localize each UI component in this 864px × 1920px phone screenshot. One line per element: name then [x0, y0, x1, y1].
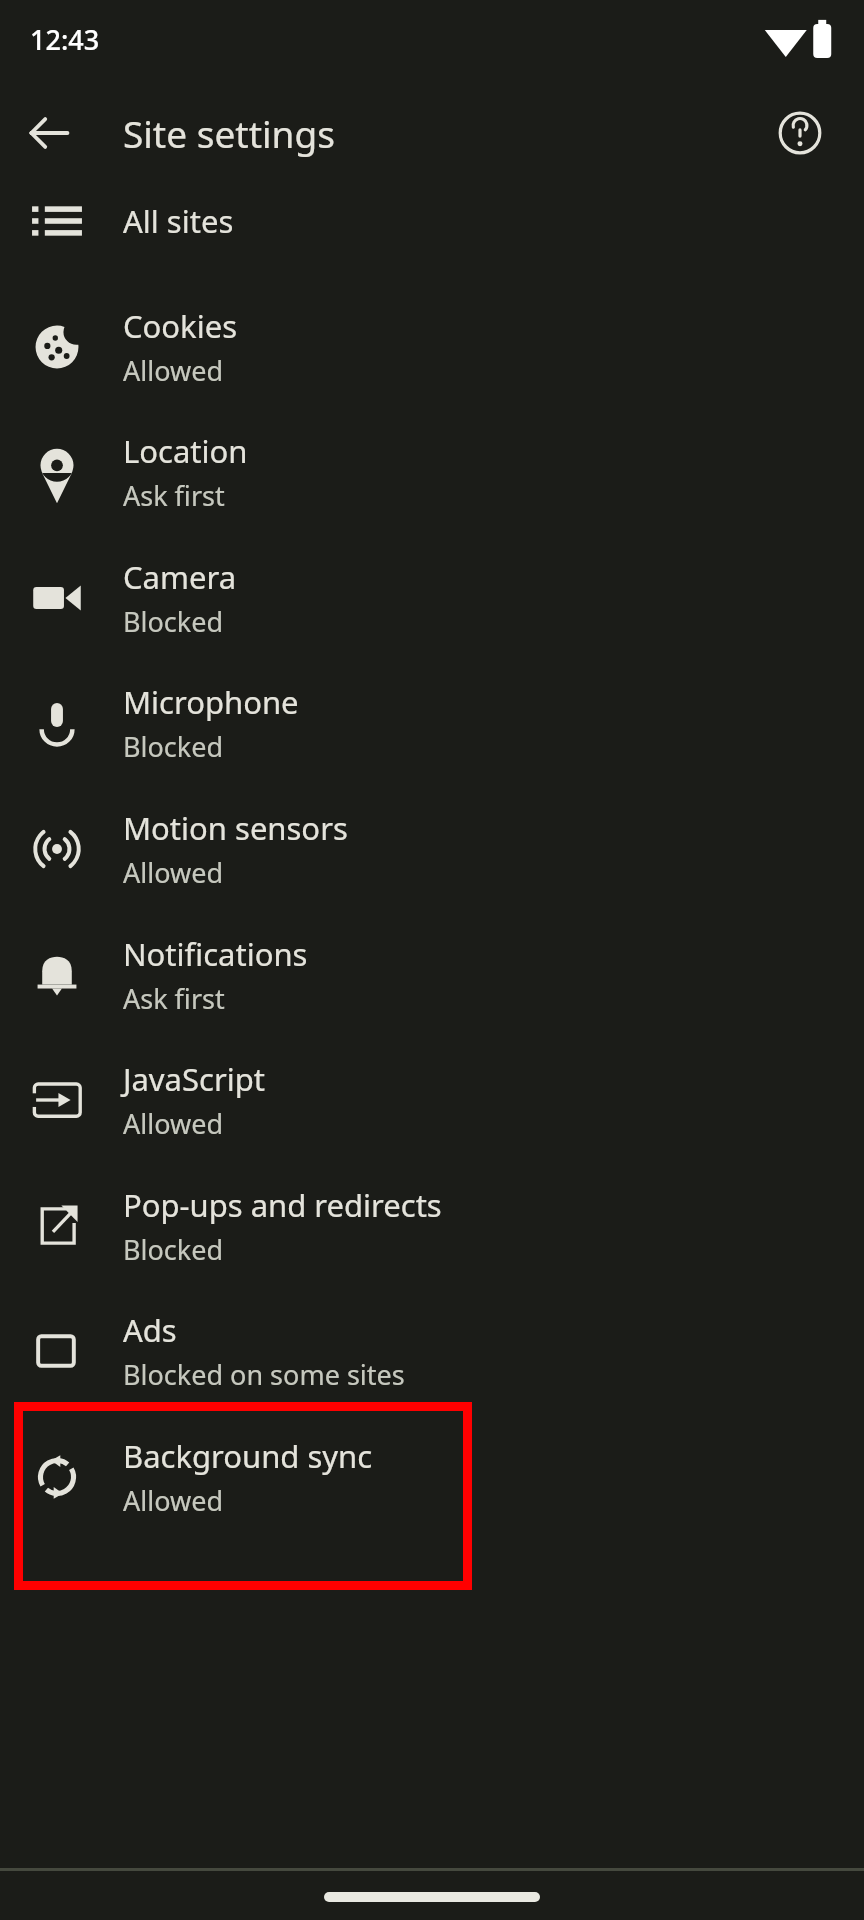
- staticText: Allowed: [123, 1105, 224, 1142]
- button[interactable]: Microphone: [0, 660, 864, 786]
- staticText: Allowed: [123, 854, 224, 891]
- staticText: Cookies: [123, 305, 237, 347]
- staticText: Location: [123, 430, 248, 472]
- staticText: Motion sensors: [123, 807, 348, 849]
- staticText: Pop-ups and redirects: [123, 1184, 442, 1226]
- staticText: Camera: [123, 556, 237, 598]
- button[interactable]: Back: [18, 102, 80, 164]
- staticText: Notifications: [123, 933, 308, 975]
- staticText: Allowed: [123, 1482, 224, 1519]
- staticText: Blocked: [123, 603, 224, 640]
- button[interactable]: Cookies: [0, 284, 864, 410]
- staticText: Site settings: [123, 108, 335, 158]
- staticText: Ask first: [123, 980, 225, 1017]
- staticText: JavaScript: [123, 1058, 265, 1100]
- button[interactable]: Help: [768, 101, 832, 165]
- button[interactable]: Pop-ups and redirects: [0, 1163, 864, 1289]
- button[interactable]: Notifications: [0, 912, 864, 1038]
- button[interactable]: JavaScript: [0, 1037, 864, 1163]
- staticText: 12:43: [30, 21, 100, 58]
- staticText: Blocked on some sites: [123, 1356, 405, 1393]
- staticText: Blocked: [123, 1231, 224, 1268]
- button[interactable]: Background sync: [0, 1414, 864, 1540]
- staticText: Allowed: [123, 352, 224, 389]
- staticText: Ask first: [123, 477, 225, 514]
- button[interactable]: Ads: [0, 1288, 864, 1414]
- button[interactable]: All sites: [0, 158, 864, 284]
- staticText: Background sync: [123, 1435, 373, 1477]
- button[interactable]: Camera: [0, 535, 864, 661]
- staticText: Ads: [123, 1309, 177, 1351]
- button[interactable]: Motion sensors: [0, 786, 864, 912]
- staticText: All sites: [123, 200, 234, 242]
- staticText: Microphone: [123, 681, 299, 723]
- button[interactable]: Location: [0, 409, 864, 535]
- staticText: Blocked: [123, 728, 224, 765]
